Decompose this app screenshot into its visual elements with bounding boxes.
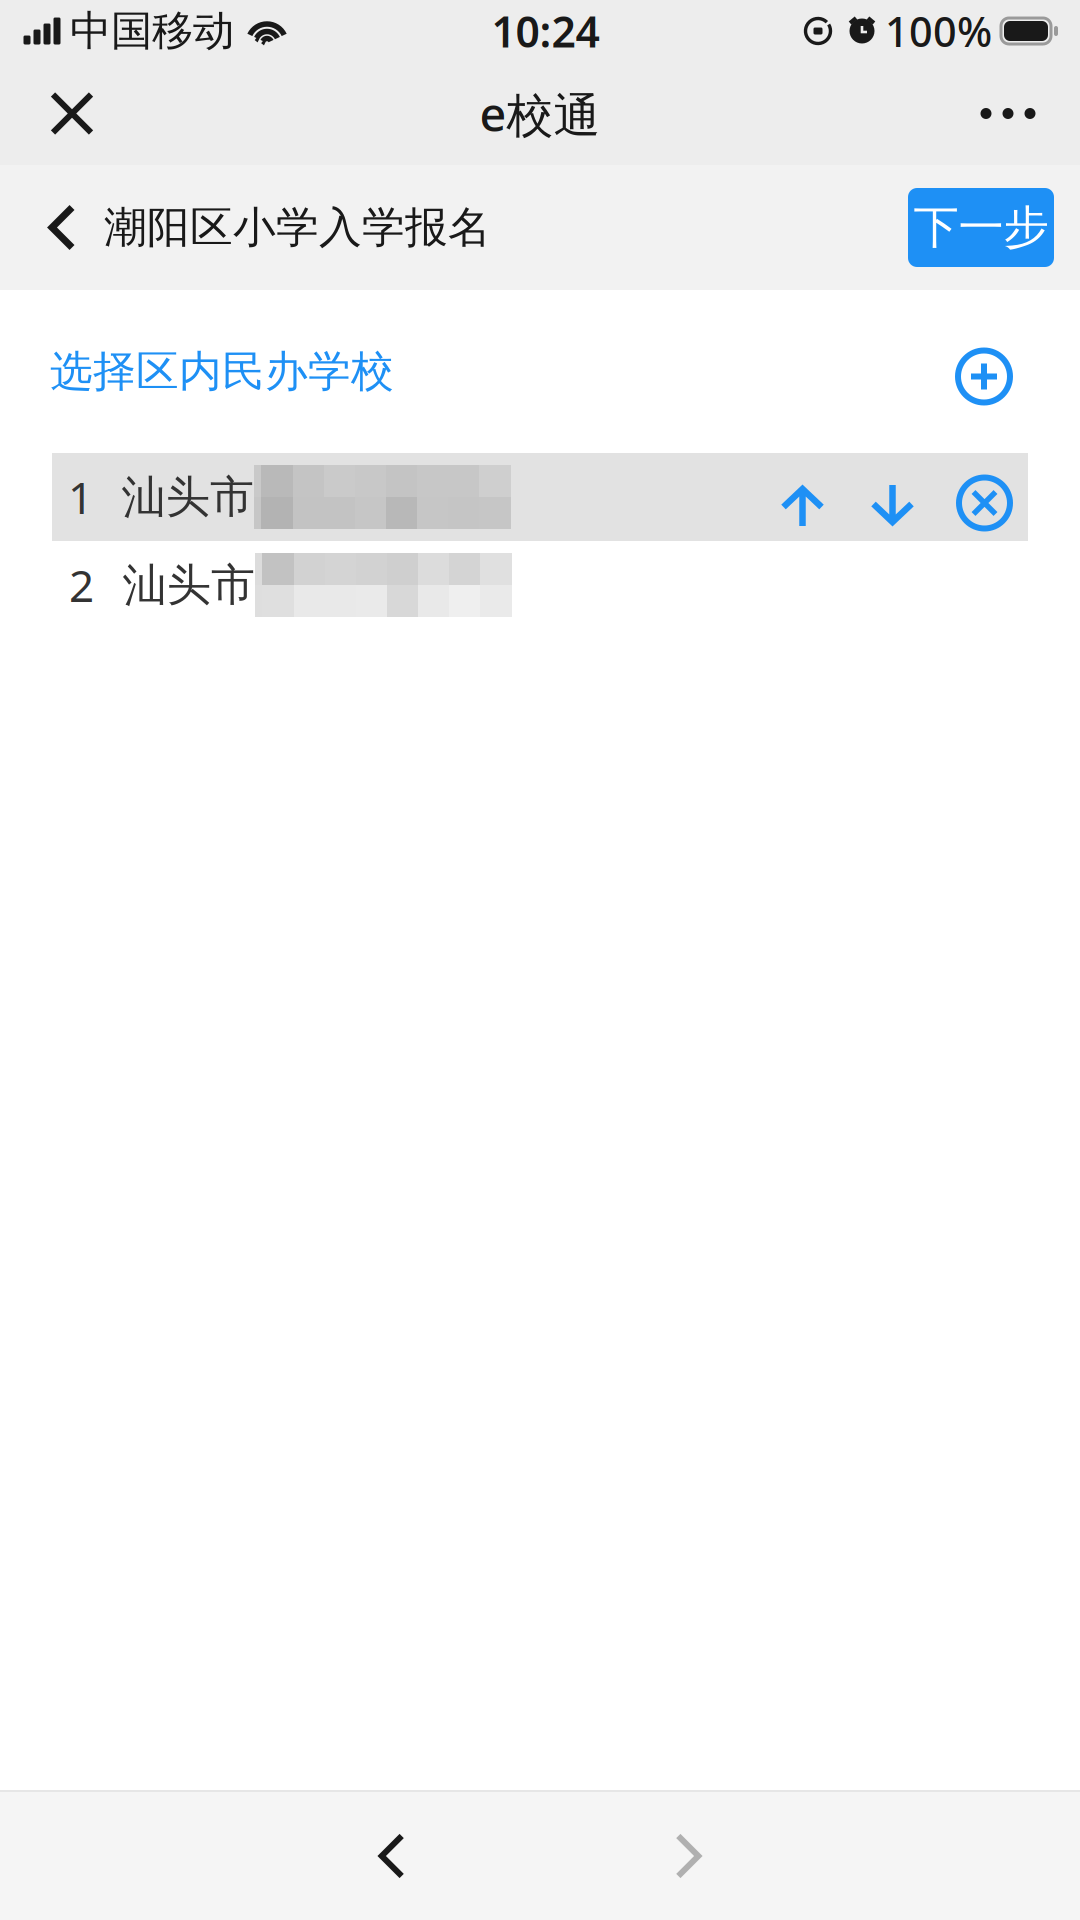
staticText: 选择区内民办学校 <box>50 345 394 398</box>
staticText: 1 <box>68 468 93 526</box>
staticText: 汕头市 <box>123 558 255 612</box>
staticText: 下一步 <box>913 200 1048 255</box>
staticText: 10:24 <box>491 3 599 59</box>
button[interactable]: More <box>960 62 1056 164</box>
staticText: 汕头市 <box>122 470 254 524</box>
button[interactable]: Back <box>337 1801 447 1911</box>
staticText: 中国移动 <box>70 6 234 56</box>
button[interactable]: 2 <box>52 541 1028 629</box>
button[interactable]: Add school <box>955 337 1013 405</box>
staticText: 2 <box>69 556 94 614</box>
staticText: 潮阳区小学入学报名 <box>104 201 491 254</box>
button[interactable]: Close <box>24 62 120 164</box>
staticText: 100% <box>885 4 992 58</box>
button[interactable]: 1 <box>52 453 1028 541</box>
button[interactable]: Forward <box>633 1801 743 1911</box>
staticText: e校通 <box>479 82 600 145</box>
button[interactable]: Back <box>26 165 98 290</box>
button[interactable]: 下一步 <box>908 188 1054 267</box>
